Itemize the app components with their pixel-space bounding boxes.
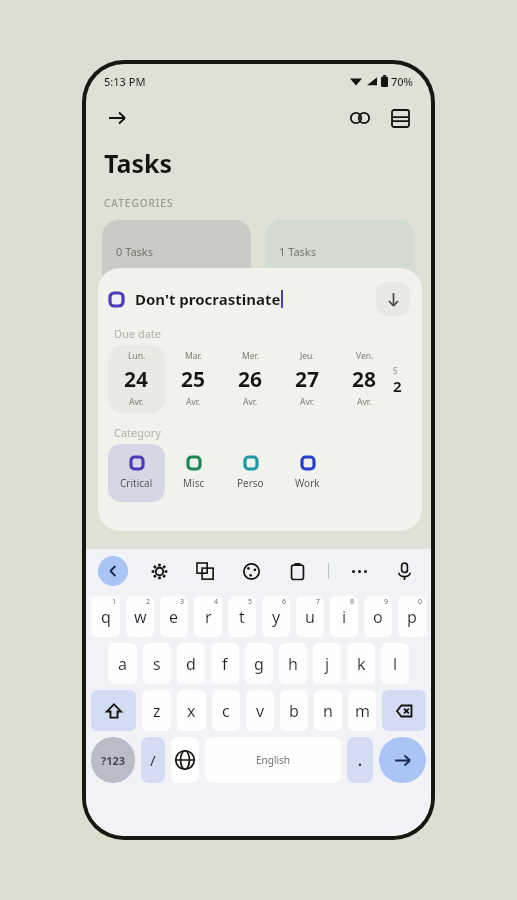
staticText: 25	[181, 365, 206, 394]
button[interactable]: c	[212, 690, 240, 731]
button[interactable]: Lun.	[108, 345, 165, 413]
button[interactable]: Perso	[222, 444, 279, 502]
staticText: 8	[350, 597, 355, 607]
staticText: Critical	[120, 476, 153, 490]
staticText: 7	[316, 597, 321, 607]
button[interactable]: .	[347, 737, 373, 783]
button[interactable]: v	[246, 690, 274, 731]
button[interactable]: m	[348, 690, 376, 731]
button[interactable]: s	[143, 643, 171, 684]
button[interactable]: ?123	[91, 737, 135, 783]
button[interactable]: Collapse	[376, 282, 410, 316]
button[interactable]: Enter	[379, 737, 426, 783]
button[interactable]: Mer.	[222, 345, 279, 413]
staticText: Avr.	[129, 396, 144, 408]
staticText: Work	[295, 476, 320, 490]
staticText: f	[222, 653, 228, 675]
staticText: n	[323, 700, 333, 722]
button[interactable]: Voice input	[389, 556, 419, 586]
button[interactable]: x	[177, 690, 206, 731]
button[interactable]: Misc	[165, 444, 222, 502]
staticText: k	[357, 653, 366, 675]
staticText: 0	[418, 597, 423, 607]
button[interactable]: h	[279, 643, 307, 684]
staticText: 70%	[391, 74, 413, 89]
button[interactable]: j	[313, 643, 341, 684]
button[interactable]: /	[141, 737, 165, 783]
staticText: Mar.	[185, 350, 202, 362]
staticText: y	[272, 606, 281, 628]
staticText: 2	[146, 597, 151, 607]
button[interactable]: a	[108, 643, 137, 684]
staticText: 0 Tasks	[116, 244, 153, 259]
staticText: 24	[124, 365, 149, 394]
staticText: d	[186, 653, 196, 675]
button[interactable]: l	[381, 643, 409, 684]
button[interactable]: z	[142, 690, 171, 731]
button[interactable]: Critical	[108, 444, 165, 502]
staticText: v	[256, 700, 265, 722]
button[interactable]: d	[177, 643, 205, 684]
button[interactable]: Mar.	[165, 345, 222, 413]
button[interactable]: u	[296, 596, 324, 637]
staticText: b	[289, 700, 299, 722]
staticText: s	[153, 653, 161, 675]
button[interactable]: q	[91, 596, 120, 637]
button[interactable]: b	[280, 690, 308, 731]
staticText: Ven.	[356, 350, 374, 362]
staticText: 4	[214, 597, 219, 607]
staticText: u	[305, 606, 315, 628]
staticText: Avr.	[186, 396, 201, 408]
button[interactable]: Theme	[236, 556, 266, 586]
button[interactable]: Layout	[383, 101, 417, 135]
staticText: l	[393, 653, 398, 675]
button[interactable]: t	[228, 596, 256, 637]
button[interactable]: English	[205, 737, 341, 783]
button[interactable]: g	[245, 643, 273, 684]
button[interactable]: i	[330, 596, 358, 637]
button[interactable]: Backspace	[382, 690, 426, 731]
staticText: m	[355, 700, 370, 722]
staticText: j	[325, 653, 330, 675]
staticText: h	[288, 653, 298, 675]
button[interactable]: w	[126, 596, 154, 637]
button[interactable]: Shift	[91, 690, 136, 731]
staticText: 6	[282, 597, 287, 607]
staticText: Don't procrastinate	[135, 289, 281, 309]
staticText: e	[169, 606, 179, 628]
button[interactable]: Jeu.	[279, 345, 336, 413]
staticText: Jeu.	[300, 350, 315, 362]
staticText: 1 Tasks	[279, 244, 316, 259]
button[interactable]: Ven.	[336, 345, 393, 413]
staticText: 3	[180, 597, 185, 607]
button[interactable]: o	[364, 596, 392, 637]
button[interactable]: Change language	[171, 737, 199, 783]
button[interactable]: 0 Tasks	[102, 220, 251, 330]
button[interactable]: n	[314, 690, 342, 731]
staticText: c	[222, 700, 230, 722]
button[interactable]: 1 Tasks	[265, 220, 415, 330]
button[interactable]: More	[345, 557, 373, 585]
staticText: Misc	[183, 476, 205, 490]
button[interactable]: Work	[279, 444, 336, 502]
staticText: g	[254, 653, 264, 675]
button[interactable]: Settings	[144, 556, 174, 586]
button[interactable]: y	[262, 596, 290, 637]
staticText: S	[393, 365, 398, 376]
staticText: /	[150, 750, 156, 770]
button[interactable]: Infinite	[343, 101, 377, 135]
button[interactable]: r	[194, 596, 222, 637]
button[interactable]: Clipboard	[282, 556, 312, 586]
staticText: 9	[384, 597, 389, 607]
staticText: 5	[248, 597, 253, 607]
button[interactable]: p	[398, 596, 426, 637]
button[interactable]: Translate	[190, 556, 220, 586]
button[interactable]: e	[160, 596, 188, 637]
button[interactable]: k	[347, 643, 375, 684]
staticText: 1	[112, 597, 117, 607]
button[interactable]: Forward	[100, 101, 134, 135]
staticText: x	[187, 700, 196, 722]
button[interactable]: Back	[98, 556, 128, 586]
button[interactable]: f	[211, 643, 239, 684]
staticText: a	[118, 653, 127, 675]
